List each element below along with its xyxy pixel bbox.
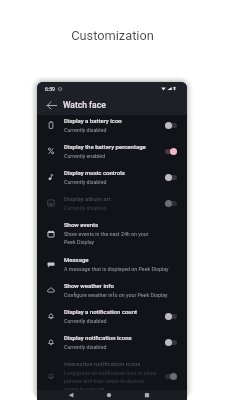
staticText: Display album art xyxy=(64,195,111,202)
button[interactable]: Display a notification count xyxy=(37,303,187,329)
staticText: Currently disabled xyxy=(64,179,107,185)
staticText: A message that is displayed on Peek Disp… xyxy=(64,266,169,272)
button[interactable]: Display music controls xyxy=(37,164,187,190)
button[interactable]: Interactive notification icons xyxy=(37,355,187,397)
staticText: Show events in the next 24h on your Peek… xyxy=(64,231,149,246)
staticText: Currently enabled xyxy=(64,153,106,159)
staticText: Configure weather info on your Peek Disp… xyxy=(64,292,168,298)
staticText: Show events xyxy=(64,221,99,228)
staticText: Watch face xyxy=(63,100,106,110)
staticText: Currently disabled xyxy=(64,318,107,324)
button[interactable]: Show events xyxy=(37,216,187,251)
staticText: Interactive notification icons xyxy=(64,360,141,367)
button[interactable]: Interactive notification icons xyxy=(165,373,177,380)
button[interactable]: Display notification icons xyxy=(165,339,177,346)
staticText: Display notification icons xyxy=(64,334,132,341)
button[interactable]: Back xyxy=(37,95,187,115)
button[interactable]: Display the battery percentage xyxy=(165,148,177,155)
staticText: Display a battery icon xyxy=(64,117,122,124)
staticText: Customization xyxy=(0,28,225,43)
button[interactable]: Show weather info xyxy=(37,277,187,303)
button[interactable]: Display a battery icon xyxy=(165,122,177,129)
staticText: Show weather info xyxy=(64,282,114,289)
staticText: Currently disabled xyxy=(64,205,107,211)
button[interactable]: Message xyxy=(37,251,187,277)
staticText: Currently disabled xyxy=(64,344,107,350)
button[interactable]: Display notification icons xyxy=(37,329,187,355)
button[interactable]: Back xyxy=(43,97,59,113)
staticText: Long press on notification icon to show … xyxy=(64,370,157,392)
staticText: Display music controls xyxy=(64,169,125,176)
staticText: Display a notification count xyxy=(64,308,138,315)
button[interactable]: Display album art xyxy=(37,190,187,216)
staticText: Currently disabled xyxy=(64,127,107,133)
button[interactable]: Display a battery icon xyxy=(37,112,187,138)
staticText: Message xyxy=(64,256,89,263)
button[interactable]: Display music controls xyxy=(165,174,177,181)
button[interactable]: Display the battery percentage xyxy=(37,138,187,164)
staticText: 6:59 xyxy=(45,86,56,92)
button[interactable]: Display album art xyxy=(165,200,177,207)
button[interactable]: Display a notification count xyxy=(165,313,177,320)
staticText: Display the battery percentage xyxy=(64,143,146,150)
